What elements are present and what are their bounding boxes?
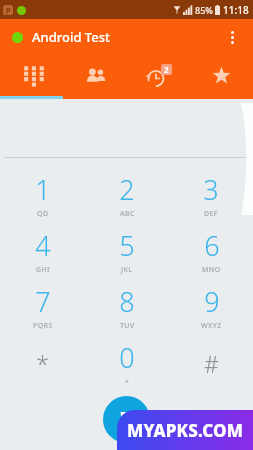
button[interactable]: 1 bbox=[0, 167, 85, 223]
staticText: 3 bbox=[203, 171, 219, 208]
button[interactable]: 7 bbox=[0, 279, 85, 335]
staticText: 11:18 bbox=[223, 3, 249, 17]
staticText: 7 bbox=[35, 283, 51, 320]
staticText: TUV bbox=[120, 321, 135, 331]
button[interactable]: 4 bbox=[0, 223, 85, 279]
staticText: p bbox=[6, 5, 11, 15]
button[interactable]: Keypad bbox=[0, 55, 64, 96]
button[interactable]: 8 bbox=[85, 279, 169, 335]
button[interactable]: Contacts bbox=[64, 55, 127, 96]
staticText: * bbox=[36, 348, 49, 379]
staticText: PQRS bbox=[33, 321, 53, 331]
button[interactable]: 5 bbox=[85, 223, 169, 279]
staticText: 9 bbox=[204, 283, 220, 320]
staticText: # bbox=[204, 348, 219, 379]
staticText: 85% bbox=[195, 4, 213, 16]
button[interactable]: 3 bbox=[169, 167, 253, 223]
button[interactable]: Recents bbox=[127, 55, 190, 96]
staticText: 5 bbox=[119, 227, 135, 264]
button[interactable]: 6 bbox=[169, 223, 253, 279]
staticText: GHI bbox=[36, 265, 51, 275]
button[interactable]: # bbox=[169, 335, 253, 391]
button[interactable]: Favorites bbox=[190, 55, 253, 96]
staticText: QD bbox=[37, 209, 49, 219]
staticText: WXYZ bbox=[201, 321, 222, 331]
button[interactable]: 9 bbox=[169, 279, 253, 335]
button[interactable]: 2 bbox=[85, 167, 169, 223]
staticText: 4 bbox=[35, 227, 51, 264]
staticText: + bbox=[125, 377, 130, 387]
staticText: 8 bbox=[119, 283, 135, 320]
staticText: Android Test bbox=[32, 28, 111, 46]
staticText: DEF bbox=[204, 209, 218, 219]
button[interactable]: Call bbox=[103, 396, 150, 443]
button[interactable]: 0 bbox=[85, 335, 169, 391]
button[interactable]: * bbox=[0, 335, 85, 391]
staticText: 6 bbox=[204, 227, 220, 264]
staticText: 0 bbox=[119, 339, 135, 376]
staticText: 2 bbox=[119, 171, 135, 208]
staticText: 1 bbox=[35, 171, 51, 208]
staticText: JKL bbox=[121, 265, 133, 275]
staticText: MYAPKS.COM bbox=[127, 419, 244, 442]
staticText: MNO bbox=[202, 265, 221, 275]
button[interactable]: More options bbox=[215, 20, 249, 54]
staticText: 2 bbox=[164, 64, 169, 75]
staticText: ABC bbox=[120, 209, 135, 219]
